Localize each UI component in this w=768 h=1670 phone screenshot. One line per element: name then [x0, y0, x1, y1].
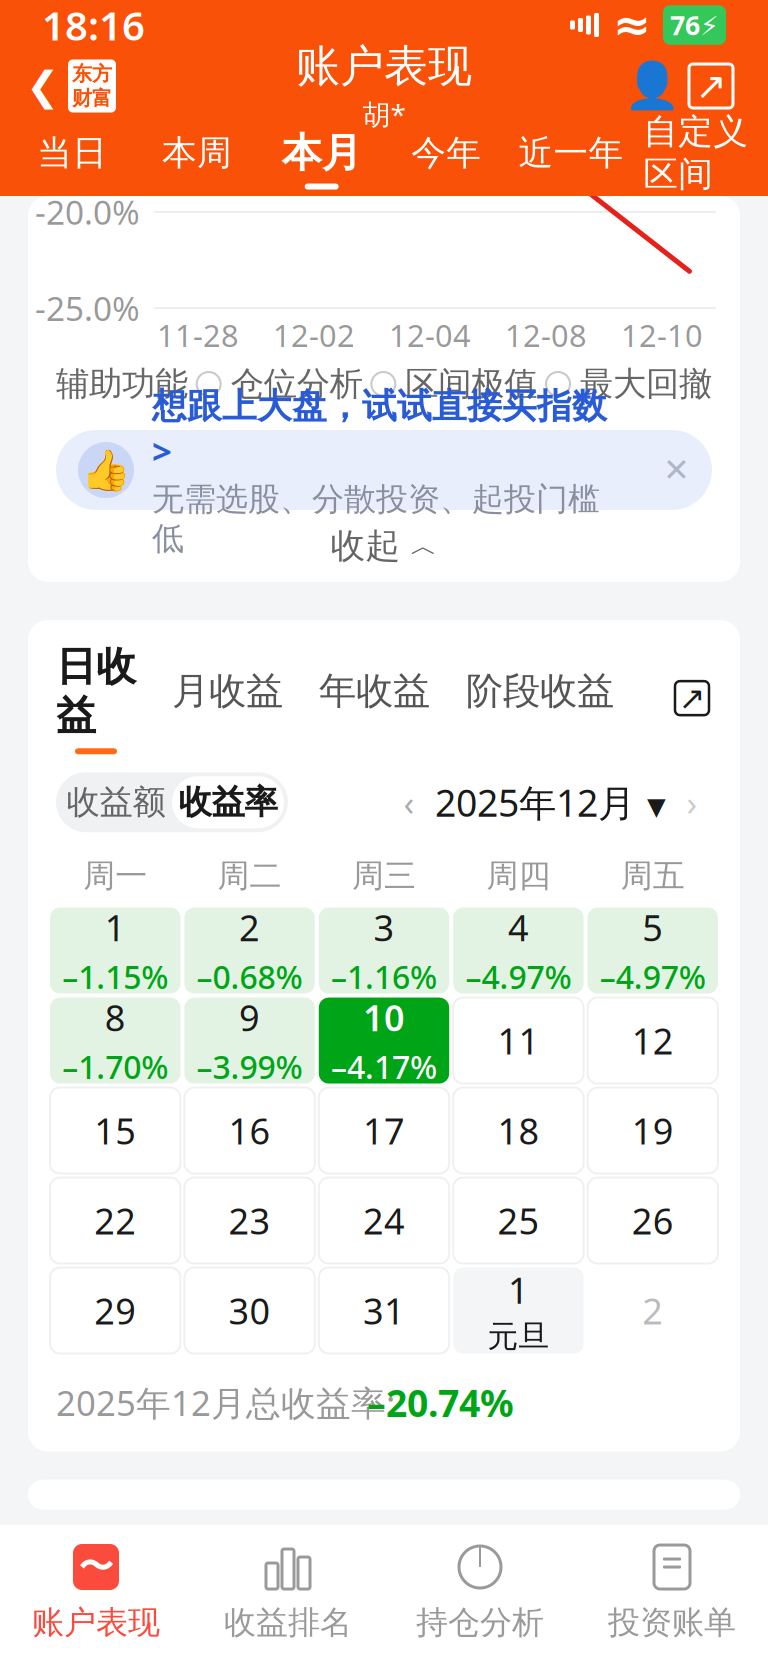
button[interactable]: 阶段收益 — [466, 668, 650, 728]
staticText: 收益额 — [66, 782, 165, 823]
staticText: 仓位分析 — [231, 363, 363, 404]
button[interactable]: 今年 — [384, 128, 509, 190]
staticText: ‹ — [403, 779, 414, 825]
button[interactable]: 日收益 — [56, 642, 172, 754]
staticText: 最大回撤 — [580, 363, 712, 404]
button[interactable]: 25 — [453, 1178, 584, 1264]
staticText: 本月 — [282, 128, 362, 177]
button[interactable]: 10 — [319, 998, 449, 1084]
staticText: –20.74% — [367, 1378, 514, 1427]
button[interactable]: 收起 — [28, 510, 740, 582]
staticText: 31 — [363, 1287, 405, 1334]
button[interactable]: 1 — [50, 908, 180, 994]
button[interactable]: 5 — [588, 908, 718, 994]
button[interactable]: 4 — [453, 908, 584, 994]
button[interactable]: 11 — [453, 998, 584, 1084]
button[interactable]: 26 — [588, 1178, 718, 1264]
staticText: 1 — [508, 1266, 529, 1314]
staticText: 8 — [105, 993, 126, 1041]
button[interactable]: 年收益 — [319, 668, 466, 728]
staticText: ❮ — [26, 63, 60, 109]
button[interactable]: 2025年12月 ▾ — [429, 777, 672, 827]
button[interactable]: 区间极值 — [371, 363, 537, 404]
staticText: 日收益 — [56, 642, 136, 740]
button[interactable]: 16 — [184, 1088, 315, 1174]
staticText: 17 — [363, 1107, 405, 1154]
staticText: –0.68% — [197, 955, 303, 998]
button[interactable]: 投资账单 — [576, 1541, 768, 1642]
button[interactable]: 24 — [319, 1178, 449, 1264]
button[interactable]: 9 — [184, 998, 315, 1084]
staticText: 24 — [363, 1197, 405, 1244]
staticText: 账户表现 — [296, 39, 472, 93]
button[interactable]: 收益率 — [172, 776, 284, 828]
staticText: 想跟上大盘，试试直接买指数 > — [152, 382, 607, 474]
staticText: –4.97% — [465, 955, 571, 998]
staticText: 26 — [632, 1197, 674, 1244]
staticText: -20.0% — [35, 190, 140, 234]
button[interactable]: 29 — [50, 1268, 180, 1354]
button[interactable]: 22 — [50, 1178, 180, 1264]
staticText: –4.17% — [331, 1045, 437, 1088]
staticText: 投资账单 — [608, 1603, 736, 1642]
staticText: ︿ — [410, 530, 437, 562]
button[interactable]: 下个月 — [672, 782, 712, 822]
button[interactable]: 自定义区间 — [633, 106, 758, 212]
button[interactable]: 月收益 — [172, 668, 319, 728]
staticText: 财富 — [72, 86, 112, 111]
staticText: 近一年 — [518, 132, 623, 174]
staticText: 23 — [229, 1197, 271, 1244]
button[interactable]: 收益额 — [60, 776, 172, 828]
staticText: 自定义区间 — [643, 110, 748, 196]
staticText: 22 — [94, 1197, 136, 1244]
staticText: 2025年12月 ▾ — [435, 777, 666, 827]
button[interactable]: 15 — [50, 1088, 180, 1174]
staticText: 1 — [105, 903, 126, 951]
button[interactable]: 账户 — [624, 58, 680, 114]
staticText: 今年 — [411, 132, 481, 174]
button[interactable]: 👍 — [56, 430, 712, 510]
staticText: –1.16% — [331, 955, 437, 998]
button[interactable]: 1 — [453, 1268, 584, 1354]
staticText: 11-28 — [157, 315, 239, 355]
button[interactable]: 近一年 — [509, 128, 633, 190]
button[interactable]: 分享 — [680, 55, 742, 117]
staticText: 76⚡︎ — [670, 7, 719, 43]
button[interactable]: 收益排名 — [192, 1541, 384, 1642]
staticText: 25 — [497, 1197, 539, 1244]
staticText: 辅助功能 — [56, 363, 188, 404]
button[interactable]: 〜 — [0, 1541, 192, 1642]
button[interactable]: 2 — [588, 1268, 718, 1354]
staticText: 12-08 — [505, 315, 587, 355]
button[interactable]: 上个月 — [389, 782, 429, 822]
button[interactable]: 18 — [453, 1088, 584, 1174]
button[interactable]: 仓位分析 — [197, 363, 363, 404]
button[interactable]: 最大回撤 — [546, 363, 712, 404]
button[interactable]: 返回 东方财富 — [26, 53, 116, 118]
button[interactable]: 19 — [588, 1088, 718, 1174]
button[interactable]: 31 — [319, 1268, 449, 1354]
button[interactable]: 本周 — [135, 128, 259, 190]
staticText: 2 — [642, 1287, 663, 1334]
button[interactable]: 23 — [184, 1178, 315, 1264]
button[interactable]: 持仓分析 — [384, 1541, 576, 1642]
staticText: 区间极值 — [405, 363, 537, 404]
button[interactable]: 30 — [184, 1268, 315, 1354]
button[interactable]: 3 — [319, 908, 449, 994]
button[interactable]: 2 — [184, 908, 315, 994]
staticText: 4 — [508, 903, 529, 951]
button[interactable]: 本月 — [259, 124, 384, 193]
staticText: 2 — [239, 903, 260, 951]
button[interactable]: 17 — [319, 1088, 449, 1174]
staticText: –3.99% — [197, 1045, 303, 1088]
staticText: ↗ — [695, 65, 726, 107]
button[interactable]: 分享收益 — [666, 672, 718, 724]
button[interactable]: 12 — [588, 998, 718, 1084]
staticText: 元旦 — [487, 1318, 549, 1355]
staticText: 30 — [229, 1287, 271, 1334]
staticText: 12-04 — [389, 315, 471, 355]
button[interactable]: 8 — [50, 998, 180, 1084]
staticText: 〜 — [78, 1546, 113, 1588]
button[interactable]: 当日 — [10, 128, 135, 190]
staticText: –1.15% — [62, 955, 168, 998]
